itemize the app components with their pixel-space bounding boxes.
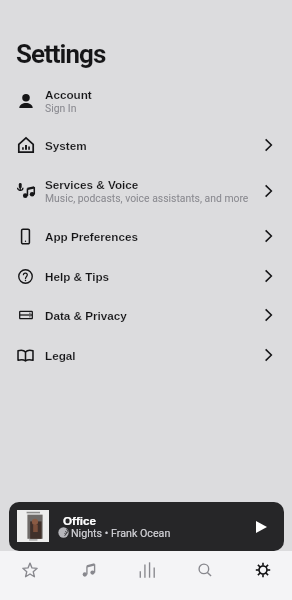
button[interactable]: Favorites [0, 551, 59, 600]
button[interactable]: System [0, 126, 292, 164]
staticText: Sign In [45, 102, 77, 114]
staticText: Help & Tips [45, 270, 110, 283]
button[interactable]: Services & Voice [0, 172, 292, 210]
button[interactable]: Search [176, 551, 234, 600]
staticText: Music, podcasts, voice assistants, and m… [45, 192, 249, 204]
staticText: App Preferences [45, 230, 138, 243]
button[interactable]: Account [0, 82, 292, 120]
button[interactable]: Settings [234, 551, 292, 600]
button[interactable]: Music [59, 551, 118, 600]
button[interactable]: Office [9, 502, 284, 551]
staticText: System [45, 139, 87, 152]
button[interactable]: App Preferences [0, 217, 292, 255]
staticText: Account [45, 88, 92, 101]
button[interactable]: Data & Privacy [0, 296, 292, 334]
staticText: Legal [45, 349, 76, 362]
staticText: Services & Voice [45, 178, 139, 191]
staticText: Data & Privacy [45, 309, 127, 322]
staticText: Settings [16, 39, 106, 69]
staticText: Nights • Frank Ocean [71, 527, 171, 540]
button[interactable]: Play [246, 512, 276, 542]
button[interactable]: Legal [0, 336, 292, 374]
button[interactable]: Help & Tips [0, 257, 292, 295]
staticText: Office [63, 514, 97, 527]
button[interactable]: Equalizer [118, 551, 176, 600]
